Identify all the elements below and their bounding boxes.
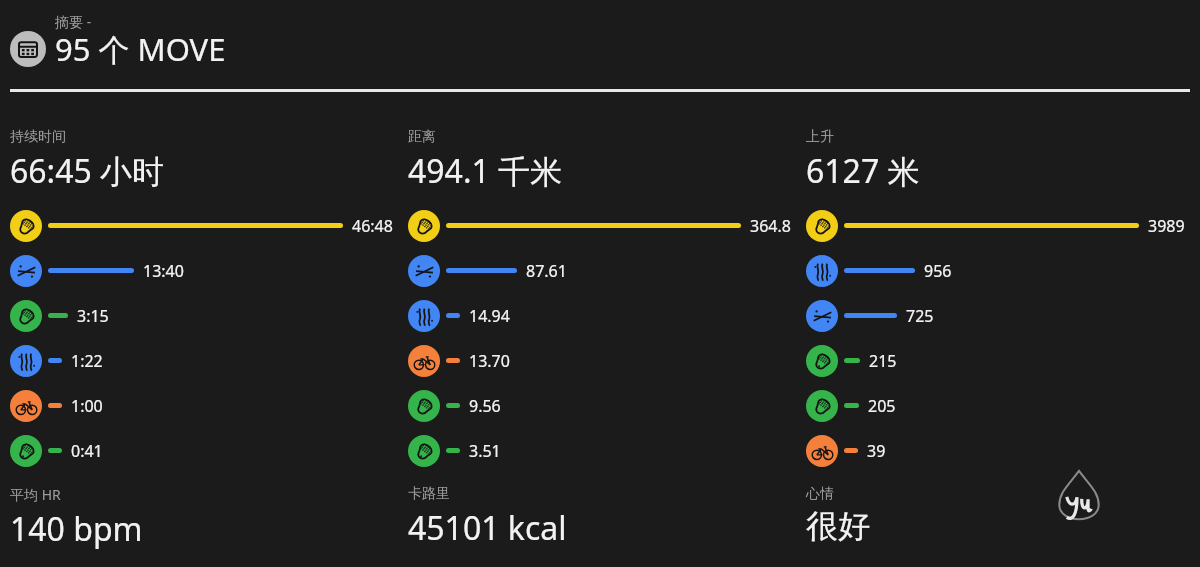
button[interactable]: Yu logo [1050,468,1108,526]
staticText: 3.51 [469,440,501,462]
button[interactable]: 205 [806,383,1200,428]
staticText: 13.70 [469,350,510,372]
staticText: 0:41 [71,440,103,462]
staticText: 平均 HR [10,485,61,504]
staticText: 很好 [806,506,870,546]
button[interactable]: 46:48 [10,203,1200,248]
staticText: 45101 kcal [408,506,567,550]
staticText: 持续时间 [10,128,66,146]
button[interactable]: 87.61 [408,248,1200,293]
staticText: 3:15 [77,305,109,327]
button[interactable]: 3989 [806,203,1200,248]
staticText: 140 bpm [10,507,143,551]
staticText: 95 个 MOVE [55,28,226,70]
button[interactable]: 3:15 [10,293,1200,338]
staticText: 39 [867,440,886,462]
button[interactable]: 364.8 [408,203,1200,248]
button[interactable]: 956 [806,248,1200,293]
staticText: 66:45 小时 [10,149,165,193]
staticText: 卡路里 [408,485,450,503]
staticText: 3989 [1148,215,1185,237]
button[interactable]: Summary [10,28,226,70]
button[interactable]: 1:22 [10,338,1200,383]
staticText: 14.94 [469,305,510,327]
staticText: 心情 [806,485,834,503]
button[interactable]: 725 [806,293,1200,338]
button[interactable]: 13:40 [10,248,1200,293]
button[interactable]: 1:00 [10,383,1200,428]
staticText: 46:48 [352,215,393,237]
staticText: 494.1 千米 [408,149,563,193]
staticText: 13:40 [143,260,184,282]
staticText: 215 [869,350,897,372]
staticText: 725 [906,305,934,327]
staticText: 摘要 - [55,12,92,31]
staticText: 1:22 [71,350,103,372]
staticText: 205 [868,395,896,417]
staticText: 364.8 [750,215,791,237]
button[interactable]: 39 [806,428,1200,473]
button[interactable]: 13.70 [408,338,1200,383]
staticText: 956 [924,260,952,282]
button[interactable]: 215 [806,338,1200,383]
staticText: 9.56 [469,395,501,417]
staticText: 距离 [408,128,436,146]
button[interactable]: 0:41 [10,428,1200,473]
staticText: 上升 [806,128,834,146]
staticText: 6127 米 [806,149,920,193]
button[interactable]: 14.94 [408,293,1200,338]
button[interactable]: 3.51 [408,428,1200,473]
button[interactable]: 9.56 [408,383,1200,428]
other: Summary [10,31,46,67]
staticText: 1:00 [71,395,103,417]
staticText: 87.61 [526,260,567,282]
